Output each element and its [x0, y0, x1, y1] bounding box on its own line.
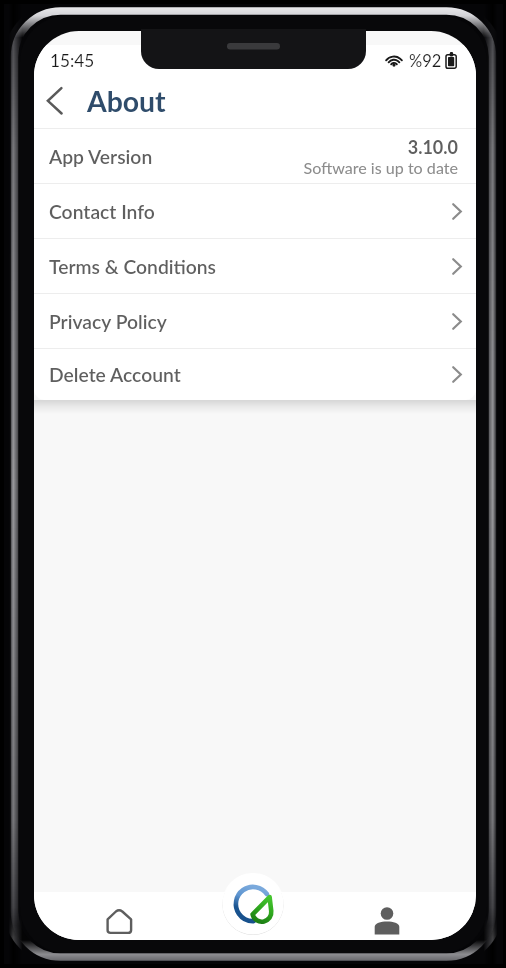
- staticText: Terms & Conditions: [49, 255, 216, 278]
- staticText: Privacy Policy: [49, 310, 167, 333]
- button[interactable]: Back: [40, 83, 80, 125]
- staticText: Software is up to date: [303, 158, 458, 177]
- button[interactable]: Terms & Conditions: [34, 239, 476, 293]
- staticText: About: [87, 84, 166, 118]
- button[interactable]: Delete Account: [34, 349, 476, 400]
- button[interactable]: Privacy Policy: [34, 294, 476, 348]
- staticText: App Version: [49, 145, 153, 168]
- staticText: 3.10.0: [407, 136, 458, 158]
- button[interactable]: App Version: [34, 129, 476, 183]
- button[interactable]: Home: [95, 897, 143, 940]
- button[interactable]: Profile: [363, 897, 411, 940]
- staticText: Contact Info: [49, 200, 155, 223]
- staticText: Delete Account: [49, 363, 181, 386]
- staticText: %92: [409, 51, 442, 71]
- button[interactable]: Contact Info: [34, 184, 476, 238]
- button[interactable]: Home logo: [222, 873, 284, 935]
- staticText: 15:45: [50, 50, 95, 71]
